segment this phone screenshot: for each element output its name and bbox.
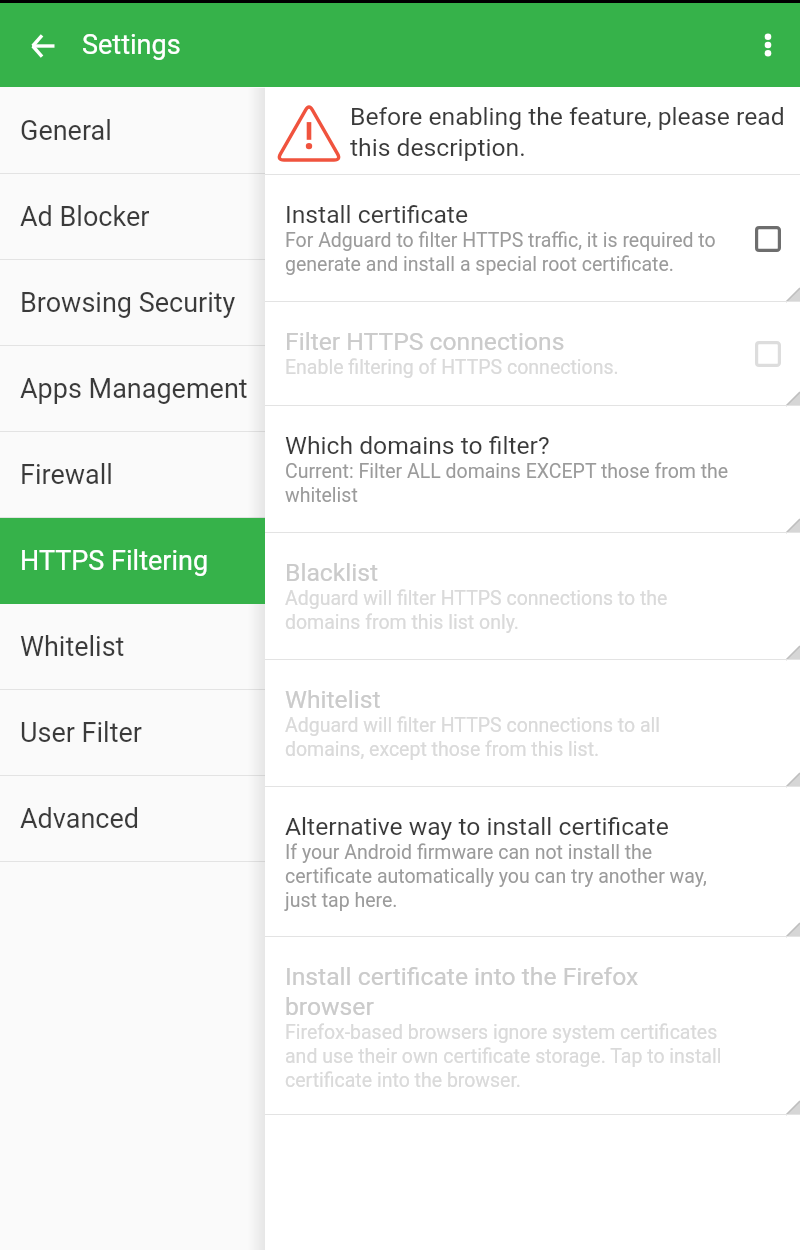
button[interactable]: Whitelist	[265, 660, 800, 787]
staticText: Blacklist	[285, 558, 700, 587]
button[interactable]: Apps Management	[0, 346, 265, 432]
staticText: Browsing Security	[20, 287, 236, 319]
staticText: For Adguard to filter HTTPS traffic, it …	[285, 229, 735, 276]
staticText: Firefox-based browsers ignore system cer…	[285, 1021, 735, 1092]
staticText: Enable filtering of HTTPS connections.	[285, 356, 735, 379]
staticText: Whitelist	[285, 685, 700, 714]
button[interactable]: Browsing Security	[0, 260, 265, 346]
staticText: Advanced	[20, 803, 139, 835]
staticText: Filter HTTPS connections	[285, 327, 700, 356]
button[interactable]: HTTPS Filtering	[0, 518, 265, 604]
button[interactable]: Alternative way to install certificate	[265, 787, 800, 937]
button[interactable]: Whitelist	[0, 604, 265, 690]
button[interactable]: Back	[17, 20, 68, 71]
staticText: Ad Blocker	[20, 201, 150, 233]
button[interactable]: General	[0, 88, 265, 174]
staticText: User Filter	[20, 717, 142, 749]
staticText: Firewall	[20, 459, 113, 491]
staticText: Install certificate	[285, 200, 700, 229]
button[interactable]: User Filter	[0, 690, 265, 776]
staticText: General	[20, 115, 112, 147]
button[interactable]: Firewall	[0, 432, 265, 518]
button[interactable]: Blacklist	[265, 533, 800, 660]
button[interactable]: More options	[740, 17, 796, 73]
staticText: Apps Management	[20, 373, 248, 405]
staticText: Adguard will filter HTTPS connections to…	[285, 714, 735, 761]
staticText: Current: Filter ALL domains EXCEPT those…	[285, 460, 735, 507]
button[interactable]: Which domains to filter?	[265, 406, 800, 533]
staticText: Settings	[82, 29, 181, 61]
staticText: HTTPS Filtering	[20, 545, 209, 577]
staticText: Whitelist	[20, 631, 125, 663]
button[interactable]: Install certificate	[265, 175, 800, 302]
staticText: Before enabling the feature, please read…	[350, 102, 800, 162]
button[interactable]: Advanced	[0, 776, 265, 862]
button[interactable]: Ad Blocker	[0, 174, 265, 260]
staticText: Which domains to filter?	[285, 431, 700, 460]
staticText: Alternative way to install certificate	[285, 812, 700, 841]
staticText: Adguard will filter HTTPS connections to…	[285, 587, 735, 634]
staticText: If your Android firmware can not install…	[285, 841, 735, 912]
button[interactable]: Filter HTTPS connections	[265, 302, 800, 406]
staticText: Install certificate into the Firefox bro…	[285, 962, 700, 1021]
button[interactable]: Install certificate into the Firefox bro…	[265, 937, 800, 1115]
